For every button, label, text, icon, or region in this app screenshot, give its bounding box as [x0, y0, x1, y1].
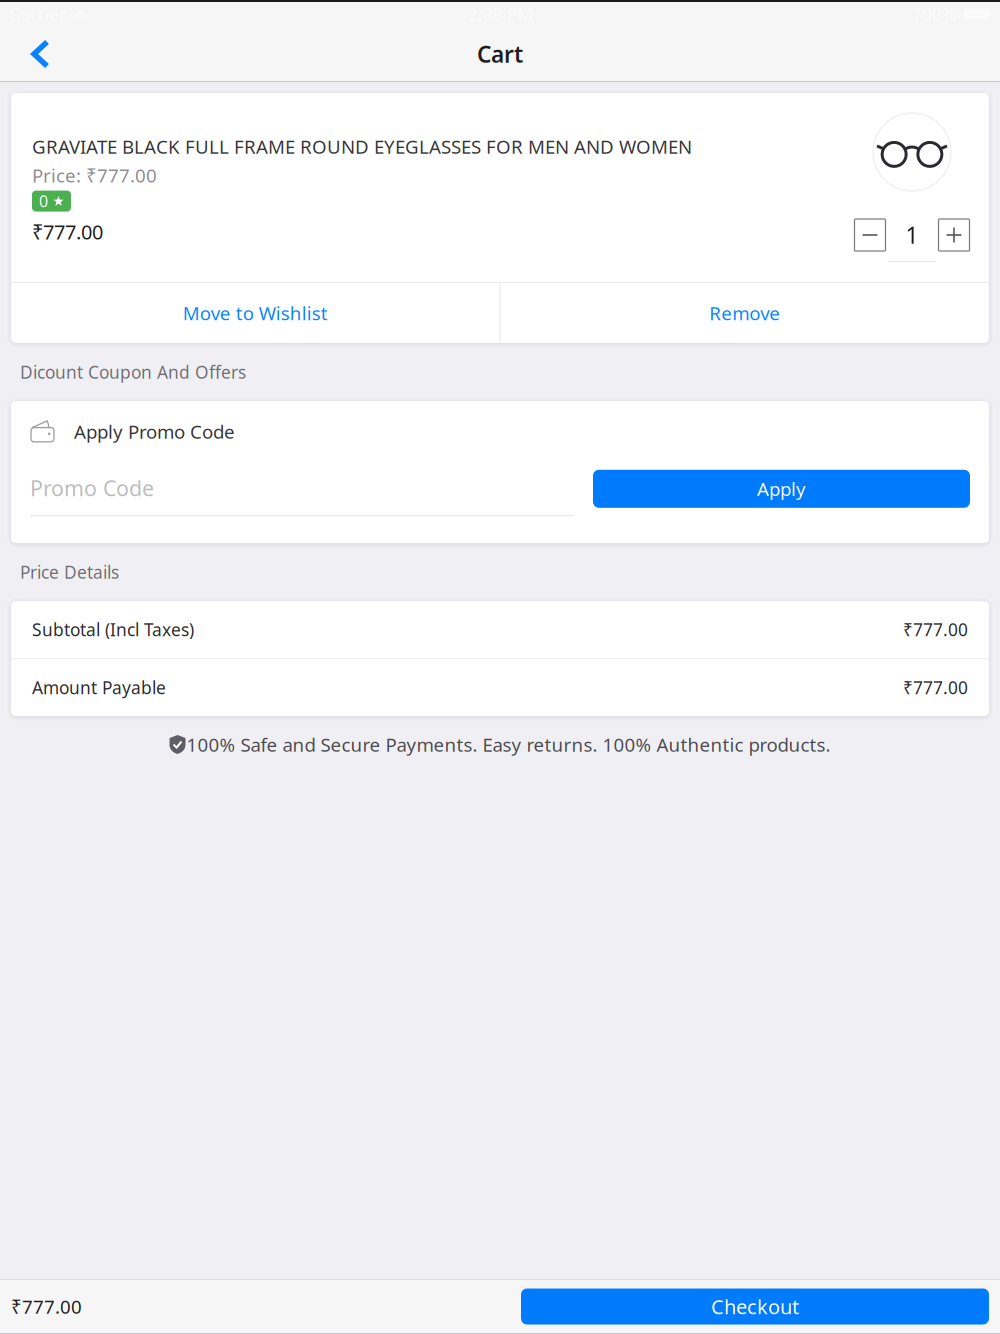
staticText: ₹777.00 [11, 1294, 82, 1319]
staticText: Apply Promo Code [74, 419, 235, 444]
button[interactable]: Increase quantity [938, 219, 969, 251]
staticText: ₹777.00 [903, 618, 968, 641]
button[interactable]: Checkout [521, 1288, 989, 1324]
staticText: Subtotal (Incl Taxes) [32, 618, 194, 641]
staticText: 100% Safe and Secure Payments. Easy retu… [186, 732, 830, 757]
staticText: Promo Code [30, 474, 154, 502]
staticText: ₹777.00 [32, 219, 103, 245]
staticText: Move to Wishlist [183, 301, 328, 325]
button[interactable]: Apply [593, 463, 970, 508]
staticText: GRAVIATE BLACK FULL FRAME ROUND EYEGLASS… [32, 134, 692, 159]
staticText: Price Details [20, 561, 119, 584]
staticText: Apply [757, 476, 806, 501]
button[interactable]: Remove [500, 283, 989, 343]
staticText: 0 [39, 190, 48, 212]
staticText: Amount Payable [32, 676, 166, 699]
button[interactable]: Decrease quantity [854, 219, 885, 251]
staticText: Remove [709, 301, 780, 325]
staticText: Dicount Coupon And Offers [20, 360, 246, 383]
staticText: Cart [477, 39, 523, 69]
staticText: ₹777.00 [903, 676, 968, 699]
staticText: 1 [905, 220, 918, 250]
staticText: Checkout [711, 1293, 799, 1320]
button[interactable]: Move to Wishlist [11, 283, 499, 343]
button[interactable]: Back [0, 28, 69, 80]
staticText: Price: ₹777.00 [32, 163, 157, 188]
